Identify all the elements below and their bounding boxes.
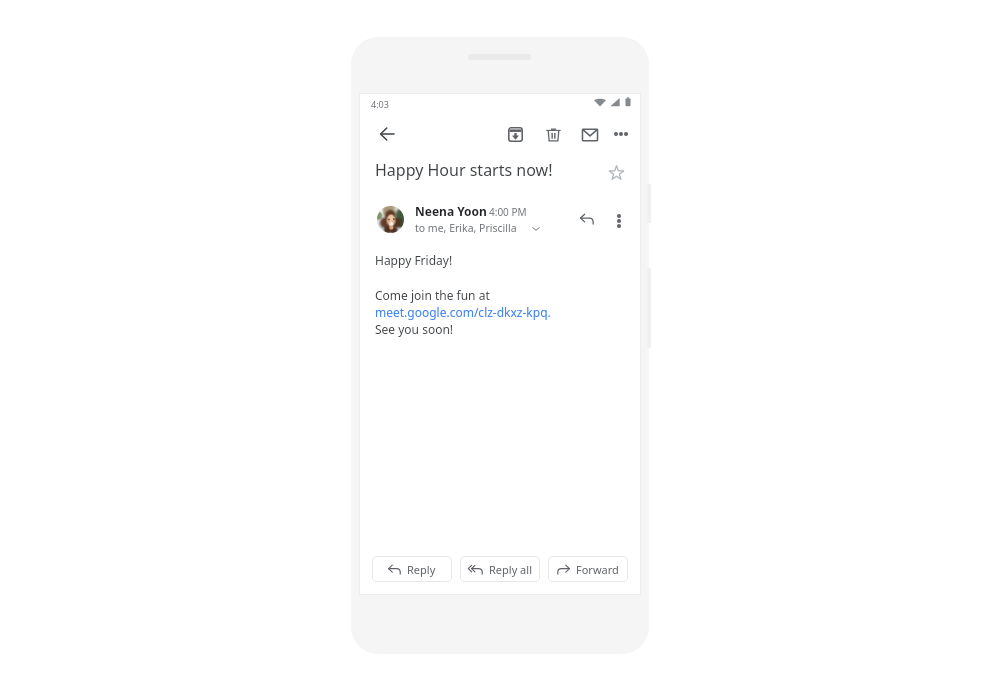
staticText: See you soon! xyxy=(375,321,454,337)
staticText: to me, Erika, Priscilla xyxy=(415,221,517,235)
staticText: Happy Friday! xyxy=(375,252,453,268)
button[interactable]: Archive xyxy=(500,119,530,149)
staticText: 4:00 PM xyxy=(489,205,527,219)
staticText: 4:03 xyxy=(371,98,389,110)
button[interactable]: Show details xyxy=(527,220,545,238)
staticText: Reply all xyxy=(489,562,532,577)
button[interactable]: Back xyxy=(372,119,402,149)
button[interactable]: Reply xyxy=(574,206,600,232)
button[interactable]: Reply all xyxy=(460,556,540,582)
button[interactable]: Delete xyxy=(538,119,568,149)
button[interactable]: More options xyxy=(606,119,636,149)
button[interactable]: meet.google.com/clz-dkxz-kpq. xyxy=(375,304,551,320)
staticText: Neena Yoon xyxy=(415,203,487,219)
button[interactable]: Forward xyxy=(548,556,628,582)
staticText: Forward xyxy=(576,562,619,577)
button[interactable]: Reply xyxy=(372,556,452,582)
staticText: Happy Hour starts now! xyxy=(375,159,553,181)
staticText: Come join the fun at xyxy=(375,287,490,303)
button[interactable]: Star xyxy=(603,159,629,185)
button[interactable]: Mark as unread xyxy=(575,119,605,149)
button[interactable]: More xyxy=(607,209,631,233)
staticText: Reply xyxy=(407,562,436,577)
